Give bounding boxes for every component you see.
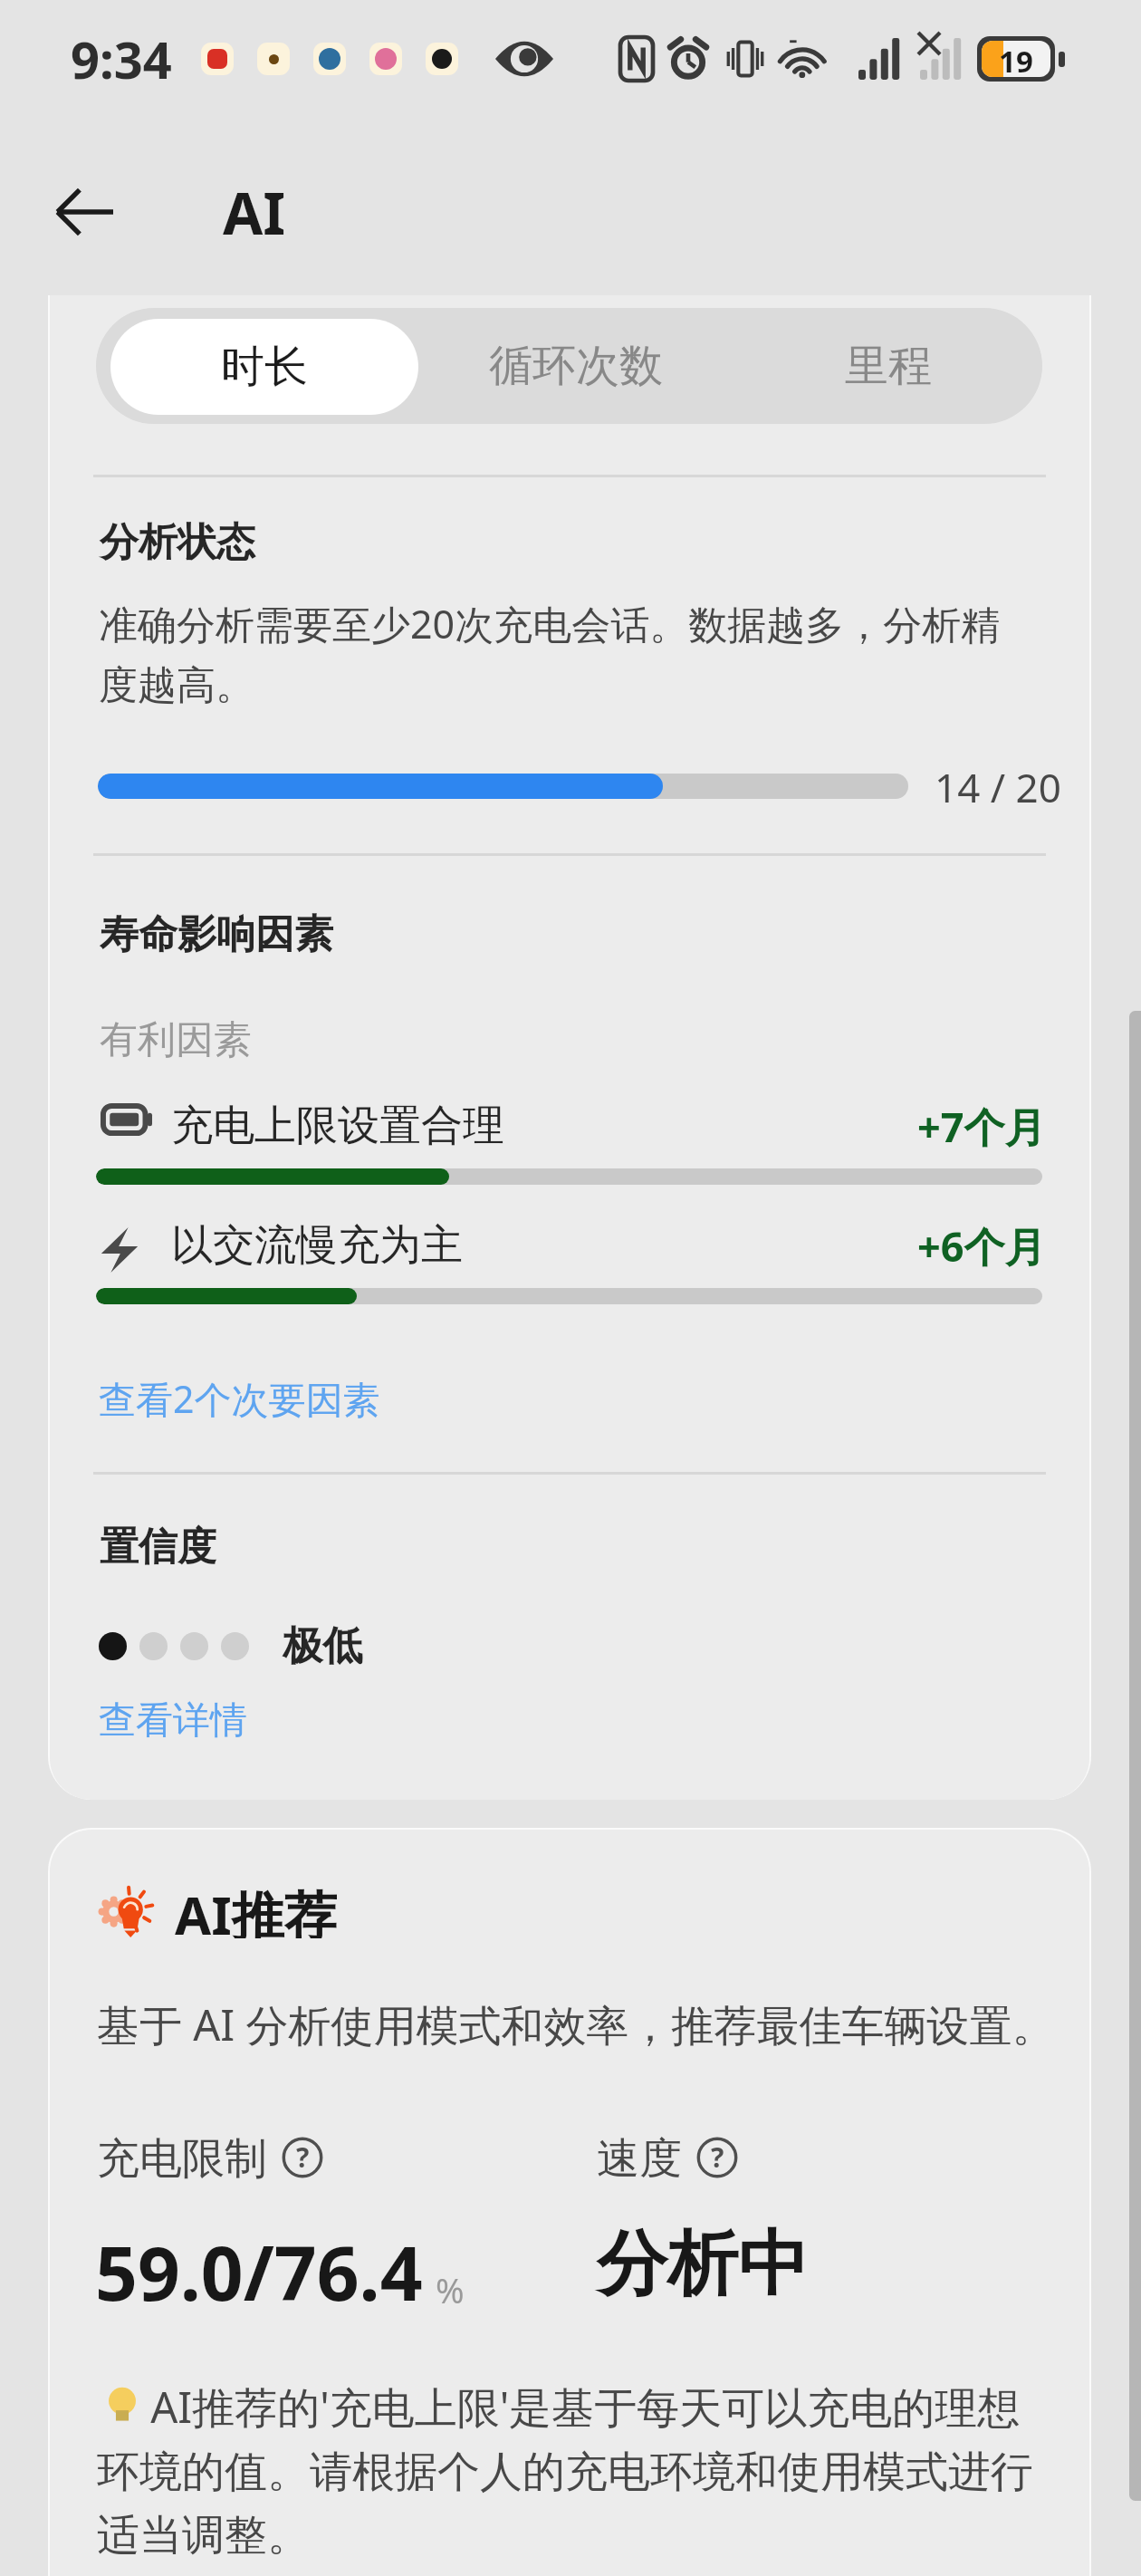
- staticText: 查看详情: [99, 1697, 247, 1745]
- button[interactable]: 时长: [110, 319, 418, 415]
- button[interactable]: 查看详情: [99, 1697, 247, 1745]
- staticText: 59.0/76.4: [95, 2221, 423, 2322]
- staticText: 14 / 20: [935, 760, 1061, 814]
- staticText: +7个月: [917, 1099, 1046, 1154]
- staticText: 极低: [283, 1621, 362, 1671]
- staticText: 时长: [221, 340, 308, 394]
- staticText: 以交流慢充为主: [171, 1219, 463, 1272]
- staticText: 9:34: [71, 24, 172, 93]
- button[interactable]: 查看2个次要因素: [99, 1373, 380, 1424]
- staticText: 寿命影响因素: [100, 910, 333, 959]
- staticText: 19: [999, 41, 1033, 77]
- staticText: ?: [296, 2139, 310, 2176]
- staticText: 置信度: [100, 1523, 216, 1572]
- staticText: +6个月: [917, 1218, 1046, 1274]
- staticText: AI: [223, 173, 286, 252]
- staticText: 循环次数: [489, 339, 663, 393]
- staticText: 准确分析需要至少20次充电会话。数据越多，分析精 度越高。: [99, 597, 1051, 710]
- button[interactable]: Back: [34, 162, 134, 262]
- staticText: 查看2个次要因素: [99, 1373, 380, 1424]
- staticText: 分析状态: [100, 518, 255, 567]
- button[interactable]: 里程: [733, 308, 1042, 424]
- staticText: 有利因素: [100, 1016, 252, 1064]
- staticText: 速度: [597, 2132, 682, 2183]
- staticText: 充电上限设置合理: [171, 1100, 504, 1152]
- staticText: %: [436, 2266, 465, 2313]
- button[interactable]: 循环次数: [418, 308, 733, 424]
- staticText: ?: [711, 2139, 724, 2176]
- staticText: 基于 AI 分析使用模式和效率，推荐最佳车辆设置。: [97, 1995, 1055, 2053]
- staticText: 里程: [845, 339, 932, 393]
- staticText: AI推荐: [175, 1879, 337, 1938]
- staticText: 充电限制: [97, 2132, 267, 2183]
- staticText: 分析中: [597, 2220, 809, 2309]
- staticText: AI推荐的'充电上限'是基于每天可以充电的理想环境的值。请根据个人的充电环境和使…: [97, 2378, 1043, 2562]
